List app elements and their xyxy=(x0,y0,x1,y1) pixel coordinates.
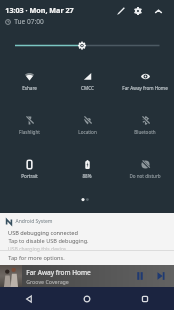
button[interactable]: Far Away from Home xyxy=(116,54,174,98)
staticText: USB debugging connected xyxy=(8,229,78,237)
button[interactable] xyxy=(0,32,174,54)
staticText: 88% xyxy=(82,173,92,179)
button[interactable]: Edit xyxy=(112,2,130,20)
staticText: Android System xyxy=(15,218,53,225)
button[interactable]: Settings xyxy=(129,2,147,20)
button[interactable]: Bluetooth xyxy=(116,98,174,142)
button[interactable]: Home xyxy=(58,287,116,310)
staticText: 13:03 · Mon, Mar 27 xyxy=(5,5,74,15)
staticText: Portrait xyxy=(21,173,38,179)
staticText: Far Away from Home xyxy=(26,268,91,277)
staticText: Tap to disable USB debugging. xyxy=(8,237,89,245)
button[interactable]: Recents xyxy=(116,287,174,310)
button[interactable]: Do not disturb xyxy=(116,142,174,186)
button[interactable]: Android System xyxy=(0,213,174,265)
staticText: Location xyxy=(78,129,97,135)
staticText: Groove Coverage xyxy=(26,278,69,285)
button[interactable]: Portrait xyxy=(0,142,58,186)
button[interactable]: Back xyxy=(0,287,58,310)
staticText: Bluetooth xyxy=(134,129,156,135)
button[interactable]: Eshare xyxy=(0,54,58,98)
staticText: Far Away from Home xyxy=(122,85,168,91)
button[interactable]: 88% xyxy=(58,142,116,186)
button[interactable]: Location xyxy=(58,98,116,142)
staticText: Tue 07:00 xyxy=(14,17,44,26)
button[interactable]: Next xyxy=(152,267,170,285)
staticText: CMCC xyxy=(81,85,94,91)
staticText: Eshare xyxy=(22,85,37,91)
button[interactable]: CMCC xyxy=(58,54,116,98)
staticText: Do not disturb xyxy=(129,173,161,179)
button[interactable]: Far Away from Home xyxy=(0,265,174,287)
staticText: Flashlight xyxy=(19,129,40,135)
staticText: USB charging this device xyxy=(8,246,66,253)
button[interactable]: Flashlight xyxy=(0,98,58,142)
button[interactable]: Pause xyxy=(131,267,149,285)
staticText: Tap for more options. xyxy=(8,254,65,262)
button[interactable]: Collapse xyxy=(149,2,167,20)
